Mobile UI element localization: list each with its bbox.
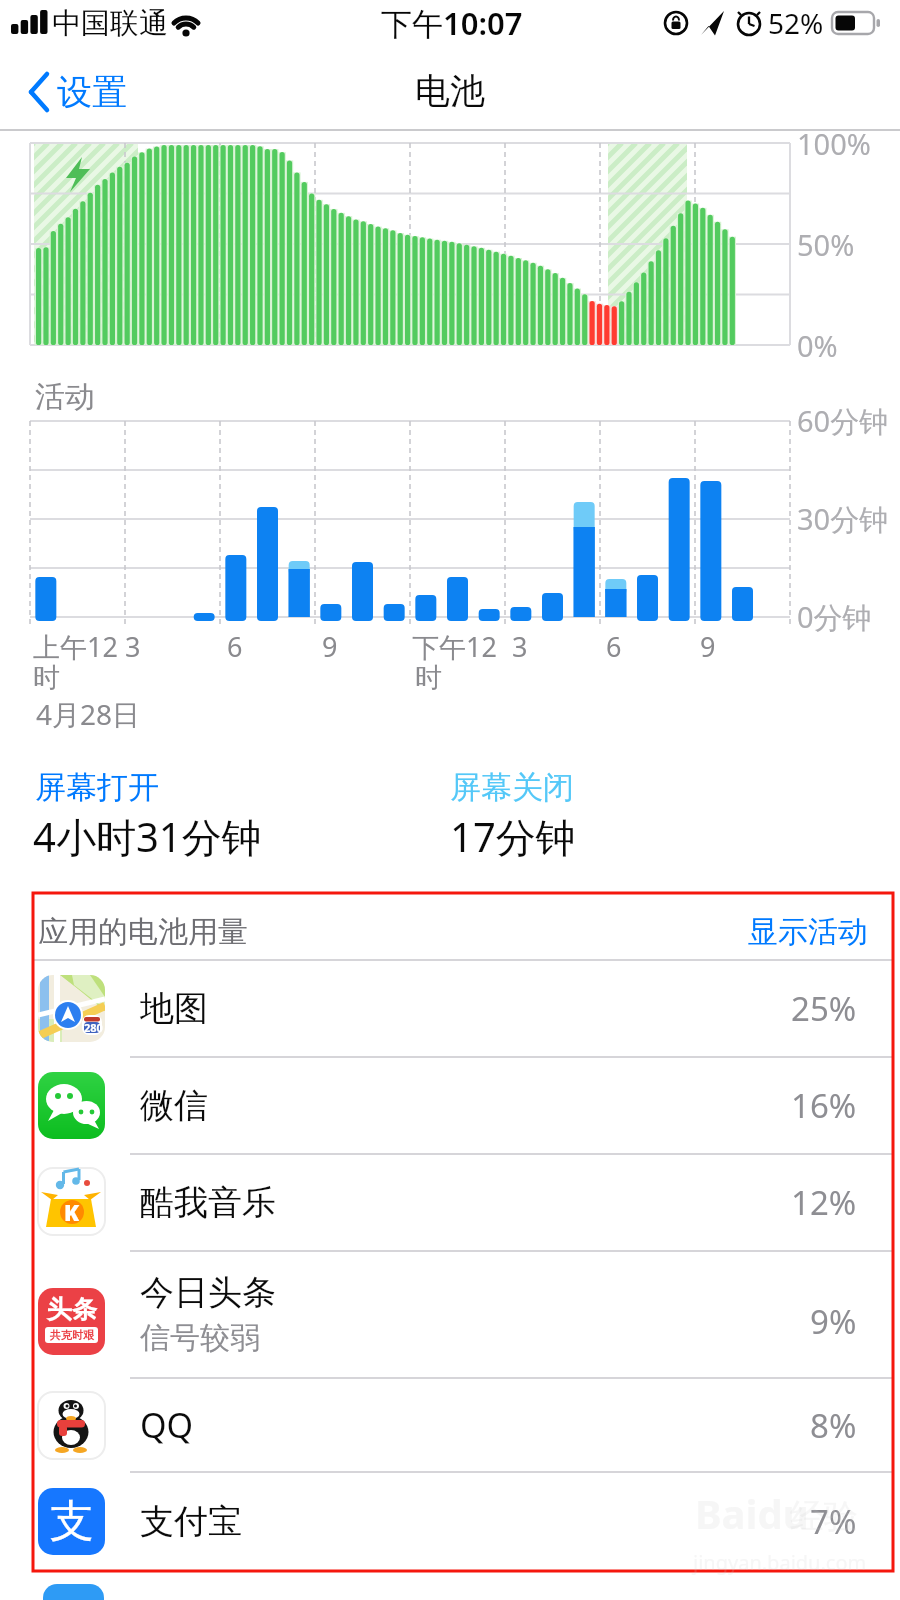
staticText: 3 xyxy=(512,628,528,665)
staticText: 0分钟 xyxy=(797,597,872,637)
staticText: 0% xyxy=(797,326,838,365)
staticText: 6 xyxy=(227,628,243,665)
staticText: 100% xyxy=(797,124,871,163)
staticText: 屏幕关闭 xyxy=(450,768,574,807)
staticText: 电池 xyxy=(415,69,485,113)
staticText: 支 xyxy=(50,1494,94,1549)
staticText: 显示活动 xyxy=(748,913,868,951)
staticText: 经验 xyxy=(790,1495,858,1538)
staticText: 30分钟 xyxy=(797,499,889,539)
button[interactable] xyxy=(33,1057,893,1154)
staticText: 52% xyxy=(768,4,824,42)
staticText: 8% xyxy=(810,1403,857,1448)
staticText: 活动 xyxy=(35,378,95,416)
staticText: 信号较弱 xyxy=(140,1319,260,1357)
staticText: 6 xyxy=(606,628,622,665)
button[interactable] xyxy=(33,1154,893,1251)
staticText: 60分钟 xyxy=(797,401,889,441)
staticText: 时 xyxy=(33,661,60,695)
staticText: 4小时31分钟 xyxy=(33,809,262,864)
staticText: 上午12 xyxy=(33,628,118,665)
button[interactable]: 显示活动 xyxy=(620,902,868,962)
staticText: 3 xyxy=(125,628,141,665)
staticText: 25% xyxy=(791,986,857,1031)
staticText: 17分钟 xyxy=(450,809,576,864)
staticText: 9 xyxy=(322,628,338,665)
staticText: 时 xyxy=(415,661,442,695)
staticText: K xyxy=(64,1197,80,1227)
staticText: 280 xyxy=(84,1020,103,1035)
staticText: 下午12 xyxy=(412,628,497,665)
staticText: 微信 xyxy=(140,1084,208,1127)
staticText: 7% xyxy=(810,1499,857,1544)
staticText: 50% xyxy=(797,225,855,264)
button[interactable] xyxy=(33,1378,893,1472)
staticText: 应用的电池用量 xyxy=(38,913,248,951)
staticText: 今日头条 xyxy=(140,1271,276,1314)
staticText: 下午10:07 xyxy=(381,2,523,44)
staticText: QQ xyxy=(140,1402,194,1448)
staticText: 地图 xyxy=(140,987,208,1030)
button[interactable] xyxy=(33,1251,893,1378)
staticText: 支付宝 xyxy=(140,1500,242,1543)
button[interactable] xyxy=(20,58,150,124)
staticText: 4月28日 xyxy=(36,695,141,733)
staticText: 设置 xyxy=(57,70,127,114)
staticText: 屏幕打开 xyxy=(35,768,159,807)
staticText: Baidu xyxy=(695,1486,809,1540)
staticText: 酷我音乐 xyxy=(140,1181,276,1224)
staticText: jingyan.baidu.com xyxy=(693,1549,867,1576)
button[interactable] xyxy=(33,1472,893,1571)
staticText: 16% xyxy=(791,1083,857,1128)
staticText: 共克时艰 xyxy=(50,1328,94,1342)
staticText: 9 xyxy=(700,628,716,665)
staticText: 12% xyxy=(791,1180,857,1225)
staticText: 中国联通 xyxy=(52,5,168,42)
button[interactable] xyxy=(33,960,893,1057)
staticText: 头条 xyxy=(47,1294,97,1325)
staticText: 9% xyxy=(810,1299,857,1344)
